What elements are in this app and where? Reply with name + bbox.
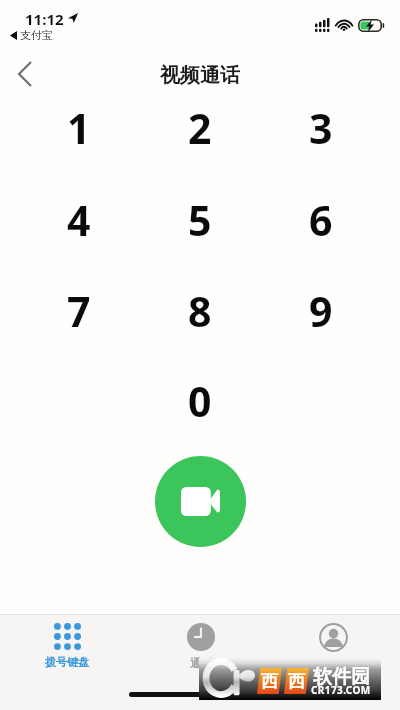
staticText: 联系人 [317, 657, 350, 671]
button[interactable]: 7 [39, 273, 119, 349]
staticText: 通话 [190, 656, 212, 670]
staticText: 11:12 [25, 9, 64, 29]
staticText: 3 [309, 100, 333, 156]
button[interactable]: 2 [160, 90, 240, 166]
button[interactable]: 通话 [134, 615, 267, 670]
button[interactable]: 4 [39, 182, 119, 258]
staticText: 0 [188, 373, 212, 429]
staticText: 软件园 [313, 665, 370, 689]
staticText: 西 [288, 671, 305, 692]
button[interactable]: Back [4, 53, 46, 95]
staticText: 5 [188, 192, 212, 248]
staticText: 1 [67, 100, 91, 156]
button[interactable]: 8 [160, 273, 240, 349]
staticText: 拨号键盘 [45, 655, 89, 669]
staticText: 支付宝 [20, 28, 53, 42]
staticText: 7 [67, 283, 91, 339]
staticText: 视频通话 [160, 63, 240, 88]
staticText: 西 [261, 671, 278, 692]
staticText: 6 [309, 192, 333, 248]
button[interactable]: 9 [281, 273, 361, 349]
staticText: 4 [67, 192, 91, 248]
button[interactable]: Start video call [155, 456, 246, 547]
staticText: 8 [188, 283, 212, 339]
staticText: 9 [309, 283, 333, 339]
button[interactable]: 3 [281, 90, 361, 166]
button[interactable]: 1 [39, 90, 119, 166]
button[interactable]: 6 [281, 182, 361, 258]
staticText: CR173.COM [311, 683, 371, 697]
button[interactable]: 5 [160, 182, 240, 258]
button[interactable]: 0 [160, 363, 240, 439]
button[interactable]: 联系人 [267, 615, 400, 671]
button[interactable]: 拨号键盘 [0, 615, 134, 669]
staticText: 2 [188, 100, 212, 156]
